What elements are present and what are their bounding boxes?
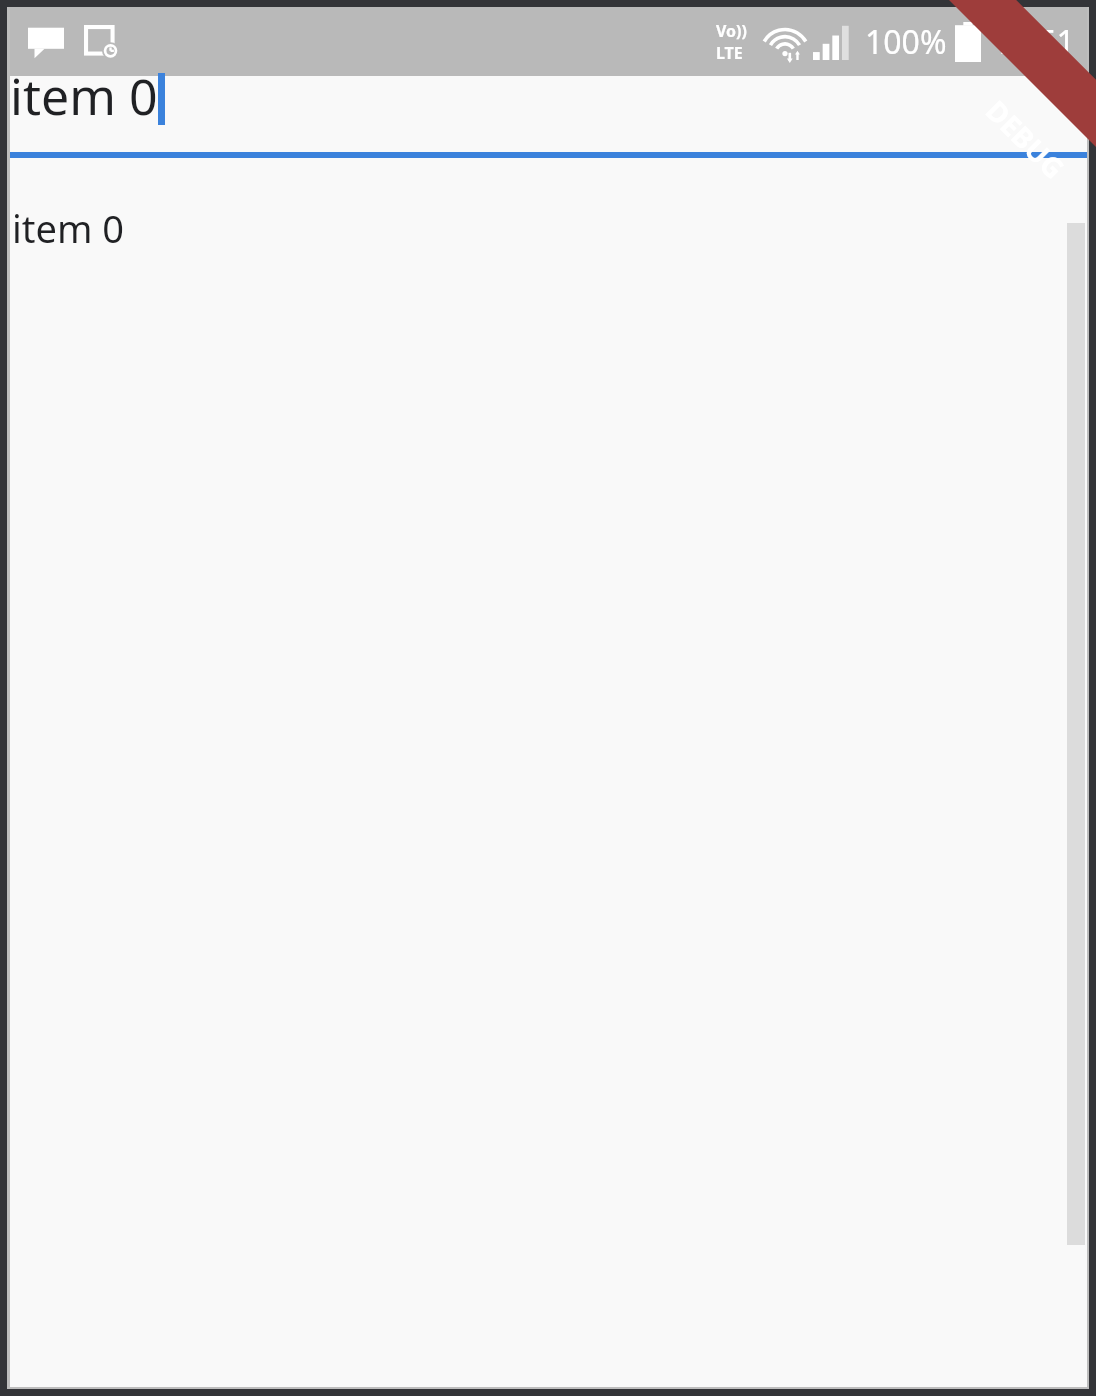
staticText: item 0 [10, 62, 158, 130]
staticText: 100% [865, 20, 947, 64]
other: Debug banner [886, 0, 1096, 210]
staticText: DEBUG [978, 91, 1073, 187]
staticText: item 0 [12, 202, 125, 254]
staticText: LTE [716, 42, 743, 64]
button[interactable]: item 0 [10, 76, 1087, 158]
staticText: Vo)) [716, 20, 747, 42]
staticText: 15:51 [993, 20, 1075, 64]
button[interactable]: item 0 [10, 198, 1087, 258]
